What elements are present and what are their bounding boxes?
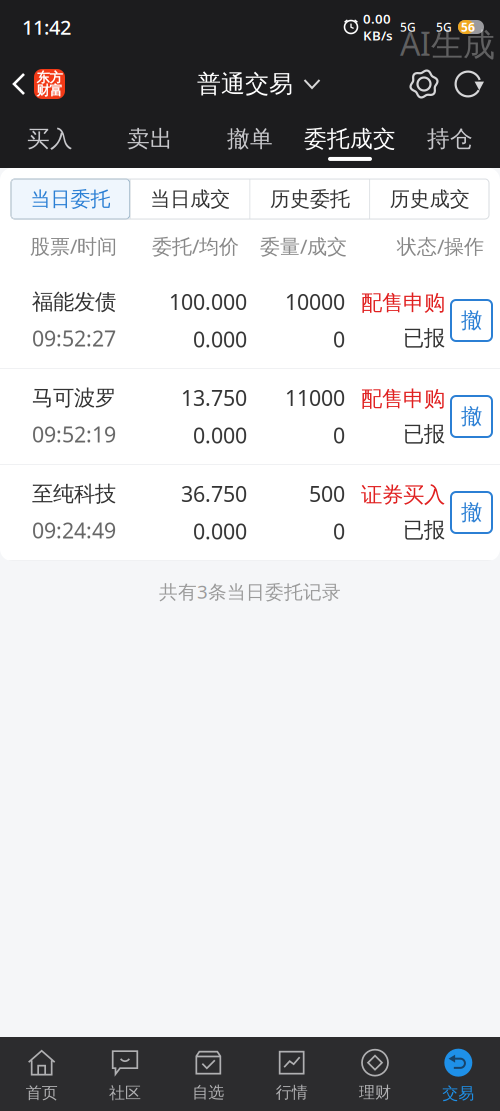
staticText: 交易 (442, 1084, 474, 1103)
staticText: 36.750 (181, 480, 247, 508)
staticText: 当日委托 (30, 187, 110, 211)
staticText: 理财 (359, 1083, 391, 1102)
staticText: 5G (436, 19, 452, 35)
staticText: 撤 (461, 307, 482, 334)
staticText: 0 (333, 517, 345, 545)
staticText: 配售申购 (361, 290, 445, 316)
staticText: 委量/成交 (260, 233, 347, 259)
staticText: 持仓 (427, 125, 473, 153)
staticText: 09:52:27 (32, 324, 116, 352)
staticText: AI生成 (400, 22, 495, 65)
staticText: 已报 (403, 325, 445, 351)
staticText: 5G (400, 19, 416, 35)
staticText: 自选 (192, 1083, 224, 1102)
staticText: 财富 (36, 82, 62, 99)
staticText: 委托成交 (304, 125, 396, 153)
button[interactable]: Refresh (446, 62, 490, 106)
staticText: 0 (333, 325, 345, 353)
button[interactable]: 撤 (451, 396, 492, 437)
staticText: 卖出 (127, 125, 173, 153)
staticText: 撤单 (227, 125, 273, 153)
staticText: 0 (333, 421, 345, 449)
button[interactable]: 卖出 (100, 114, 200, 168)
staticText: 历史成交 (390, 187, 470, 211)
staticText: 首页 (26, 1083, 58, 1103)
staticText: 共有3条当日委托记录 (159, 579, 341, 604)
button[interactable]: 历史成交 (370, 179, 489, 219)
staticText: 福能发债 (32, 289, 116, 315)
button[interactable]: 理财 (333, 1037, 417, 1111)
button[interactable]: 普通交易 (179, 69, 321, 99)
staticText: 历史委托 (270, 187, 350, 211)
button[interactable]: Settings (402, 62, 446, 106)
staticText: 东方 (36, 69, 62, 86)
staticText: 11000 (285, 384, 345, 412)
button[interactable]: 委托成交 (300, 114, 400, 168)
button[interactable]: 撤单 (200, 114, 300, 168)
button[interactable]: 首页 (0, 1037, 83, 1111)
staticText: 已报 (403, 421, 445, 447)
button[interactable]: 撤 (451, 300, 492, 341)
button[interactable]: 撤 (451, 492, 492, 533)
staticText: 行情 (276, 1083, 308, 1102)
button[interactable]: 行情 (250, 1037, 333, 1111)
staticText: 证券买入 (361, 482, 445, 508)
button[interactable]: 当日委托 (11, 179, 130, 219)
staticText: 09:52:19 (32, 420, 116, 448)
staticText: 10000 (285, 288, 345, 316)
staticText: 状态/操作 (397, 233, 484, 259)
button[interactable]: 交易 (417, 1037, 500, 1111)
staticText: 普通交易 (197, 69, 293, 99)
staticText: 09:24:49 (32, 516, 116, 544)
staticText: 撤 (461, 403, 482, 430)
button[interactable]: 当日成交 (131, 179, 250, 219)
staticText: 马可波罗 (32, 385, 116, 411)
staticText: 100.000 (169, 288, 247, 316)
staticText: 0.000 (193, 325, 247, 353)
button[interactable]: 社区 (83, 1037, 167, 1111)
staticText: 股票/时间 (30, 233, 117, 259)
staticText: 11:42 (22, 14, 71, 40)
staticText: 0.000 (193, 517, 247, 545)
staticText: KB/s (363, 26, 393, 44)
button[interactable]: 持仓 (400, 114, 500, 168)
staticText: 委托/均价 (152, 233, 239, 259)
staticText: 配售申购 (361, 386, 445, 412)
button[interactable]: 历史委托 (250, 179, 369, 219)
staticText: 撤 (461, 499, 482, 526)
button[interactable]: 买入 (0, 114, 100, 168)
staticText: 0.00 (363, 10, 391, 27)
staticText: 已报 (403, 517, 445, 543)
staticText: 0.000 (193, 421, 247, 449)
staticText: 13.750 (181, 384, 247, 412)
staticText: 社区 (109, 1083, 141, 1103)
button[interactable]: 东方财富 (34, 69, 65, 99)
staticText: 买入 (27, 125, 73, 153)
staticText: 当日成交 (150, 187, 230, 211)
button[interactable]: 自选 (167, 1037, 250, 1111)
staticText: 至纯科技 (32, 481, 116, 507)
staticText: 56 (461, 19, 475, 35)
staticText: 500 (309, 480, 345, 508)
button[interactable]: Back (0, 54, 34, 114)
